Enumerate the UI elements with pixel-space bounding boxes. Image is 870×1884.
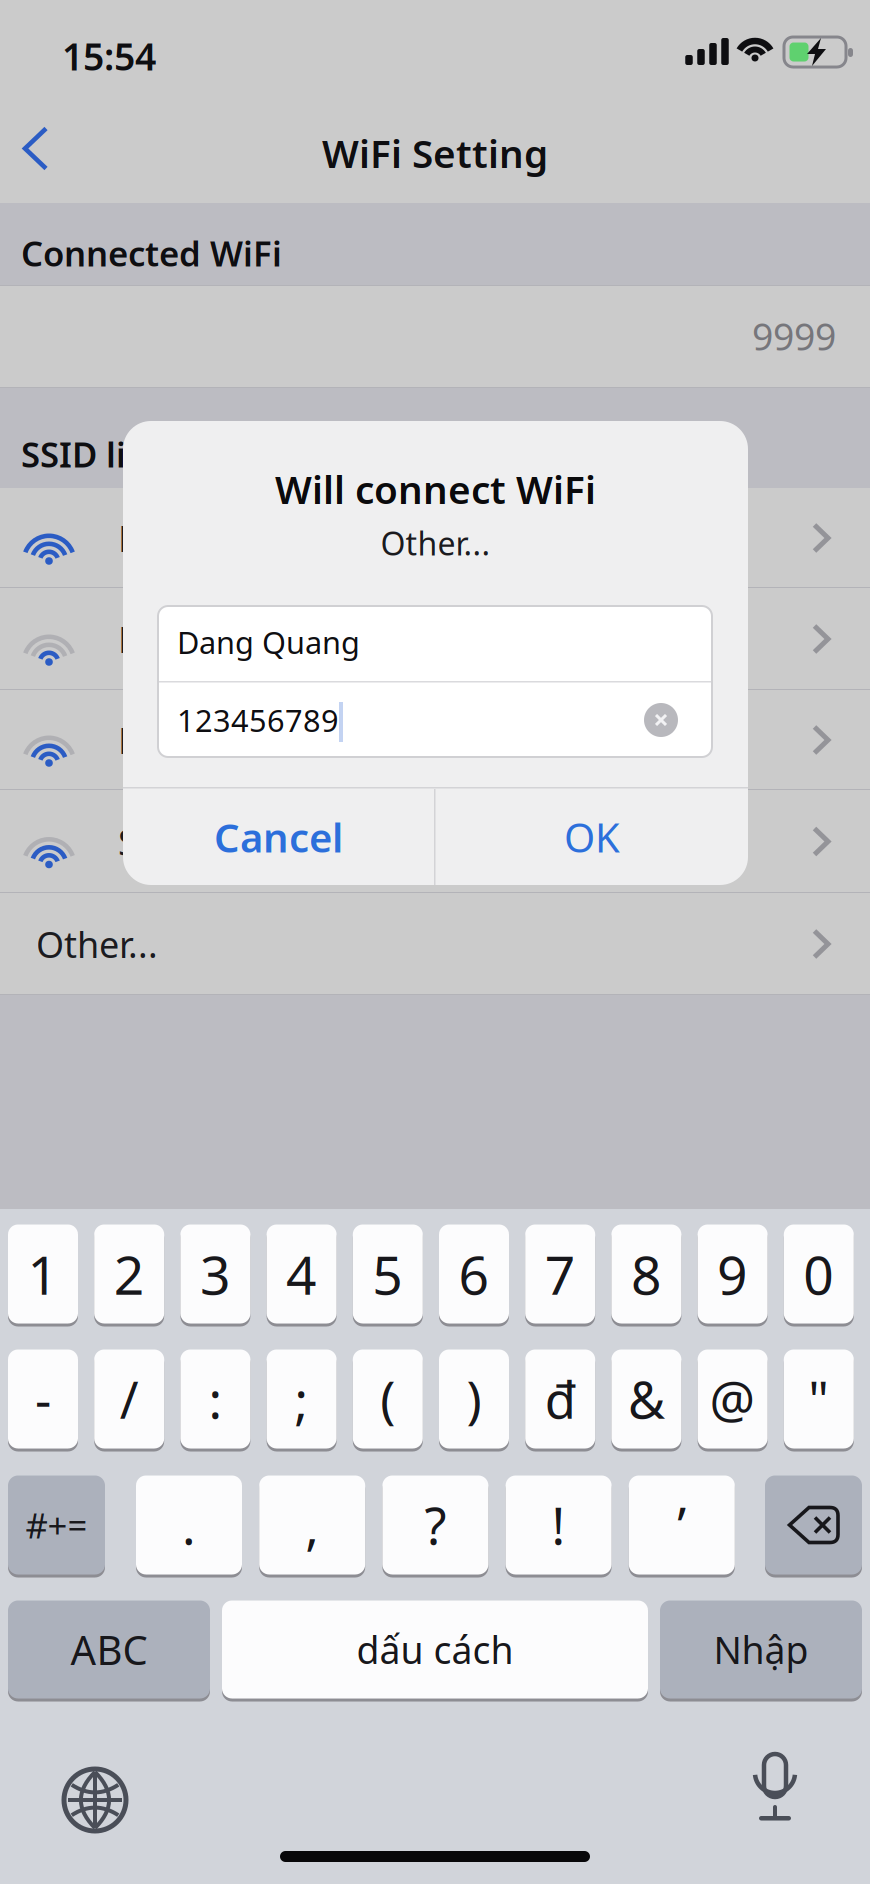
button[interactable]: 7 <box>525 1224 595 1326</box>
button[interactable]: Nhập <box>660 1600 862 1701</box>
staticText: 2 <box>114 1239 145 1309</box>
button[interactable]: OK <box>436 789 748 885</box>
button[interactable]: 3 <box>180 1224 250 1326</box>
staticText: SSID list <box>21 431 157 477</box>
staticText: ABC <box>70 1623 147 1676</box>
button[interactable]: 9 <box>698 1224 768 1326</box>
staticText: Connected WiFi <box>21 230 282 276</box>
button[interactable]: - <box>8 1349 78 1451</box>
button[interactable]: HOME_5G <box>0 588 870 690</box>
staticText: & <box>628 1365 665 1433</box>
button[interactable]: ( <box>353 1349 423 1451</box>
staticText: , <box>305 1491 319 1559</box>
button[interactable]: 4 <box>267 1224 337 1326</box>
button[interactable]: dấu cách <box>222 1600 648 1701</box>
staticText: 123456789 <box>177 700 339 740</box>
button[interactable]: ; <box>267 1349 337 1451</box>
button[interactable]: #+= <box>8 1475 105 1577</box>
staticText: 5 <box>372 1239 403 1309</box>
button[interactable]: , <box>259 1475 365 1577</box>
staticText: ( <box>380 1365 395 1433</box>
staticText: Other... <box>380 522 490 564</box>
button[interactable]: ! <box>506 1475 612 1577</box>
button[interactable]: Sky <box>0 790 870 893</box>
button[interactable]: ’ <box>629 1475 735 1577</box>
staticText: : <box>208 1365 222 1433</box>
staticText: WiFi Setting <box>322 127 548 179</box>
button[interactable]: : <box>180 1349 250 1451</box>
staticText: - <box>35 1365 51 1433</box>
staticText: 0 <box>803 1239 834 1309</box>
button[interactable]: 6 <box>439 1224 509 1326</box>
button[interactable]: ) <box>439 1349 509 1451</box>
staticText: 4 <box>286 1239 317 1309</box>
staticText: 1 <box>27 1239 58 1309</box>
staticText: ? <box>424 1491 446 1559</box>
button[interactable]: . <box>136 1475 242 1577</box>
button[interactable]: & <box>611 1349 681 1451</box>
button[interactable]: Dictation <box>753 1754 797 1820</box>
staticText: . <box>182 1491 196 1559</box>
button[interactable]: 0 <box>784 1224 854 1326</box>
button[interactable]: Other... <box>0 893 870 995</box>
staticText: 9 <box>717 1239 748 1309</box>
staticText: 9999 <box>752 311 836 361</box>
button[interactable]: Back <box>0 95 104 203</box>
staticText: " <box>808 1365 829 1433</box>
button[interactable]: / <box>94 1349 164 1451</box>
button[interactable]: ABC <box>8 1600 210 1701</box>
staticText: ’ <box>677 1491 686 1559</box>
button[interactable]: HOME <box>0 488 870 588</box>
staticText: / <box>120 1365 139 1433</box>
staticText: HOME_5G <box>118 615 289 663</box>
button[interactable]: 5 <box>353 1224 423 1326</box>
button[interactable]: " <box>784 1349 854 1451</box>
staticText: 3 <box>200 1239 231 1309</box>
button[interactable]: HOME-2 <box>0 690 870 790</box>
staticText: @ <box>710 1365 756 1433</box>
button[interactable]: Delete <box>765 1475 862 1577</box>
staticText: #+= <box>25 1502 87 1548</box>
staticText: ! <box>552 1491 566 1559</box>
button[interactable]: Cancel <box>123 789 434 885</box>
staticText: Will connect WiFi <box>275 463 596 515</box>
button[interactable]: ? <box>382 1475 488 1577</box>
staticText: Sky <box>118 818 175 865</box>
staticText: dấu cách <box>356 1625 513 1674</box>
staticText: Nhập <box>713 1625 808 1674</box>
staticText: OK <box>564 810 620 863</box>
staticText: ; <box>295 1365 309 1433</box>
button[interactable]: 2 <box>94 1224 164 1326</box>
staticText: 15:54 <box>62 31 156 81</box>
button[interactable]: đ <box>525 1349 595 1451</box>
button[interactable]: @ <box>698 1349 768 1451</box>
button[interactable]: 1 <box>8 1224 78 1326</box>
staticText: Cancel <box>214 810 343 863</box>
staticText: HOME <box>118 514 226 562</box>
button[interactable]: Next keyboard <box>64 1769 126 1831</box>
staticText: 7 <box>545 1239 576 1309</box>
staticText: 6 <box>458 1239 489 1309</box>
staticText: ) <box>466 1365 481 1433</box>
staticText: Dang Quang <box>177 622 360 662</box>
button[interactable]: 8 <box>611 1224 681 1326</box>
button[interactable]: Clear text <box>644 703 678 737</box>
staticText: HOME-2 <box>118 716 259 764</box>
staticText: đ <box>545 1365 576 1433</box>
staticText: 8 <box>631 1239 662 1309</box>
staticText: Other... <box>36 920 158 968</box>
